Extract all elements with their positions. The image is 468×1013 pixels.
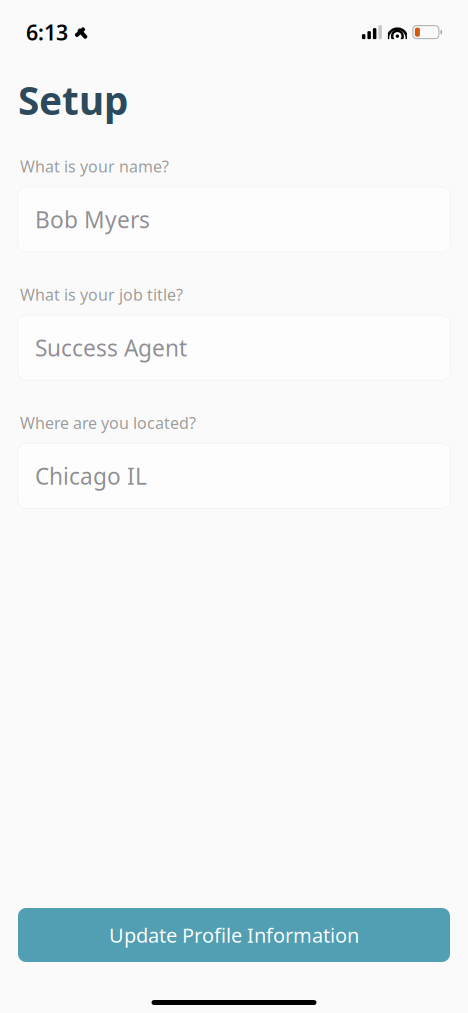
staticText: Success Agent [35, 333, 187, 363]
button[interactable]: Update Profile Information [18, 908, 450, 962]
staticText: Setup [18, 74, 128, 126]
staticText: Chicago IL [35, 461, 147, 491]
staticText: Bob Myers [35, 204, 150, 234]
staticText: What is your job title? [20, 284, 183, 305]
staticText: Update Profile Information [109, 922, 359, 948]
staticText: Where are you located? [20, 412, 196, 433]
staticText: 6:13 [26, 18, 68, 46]
staticText: What is your name? [20, 156, 169, 177]
